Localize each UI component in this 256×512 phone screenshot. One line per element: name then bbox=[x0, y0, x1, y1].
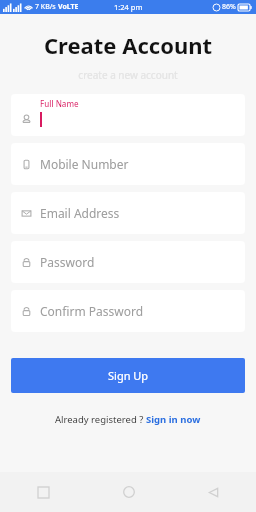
staticText: Confirm Password bbox=[40, 303, 144, 319]
button[interactable]: Password bbox=[11, 241, 245, 283]
button[interactable]: Sign in now bbox=[146, 413, 201, 426]
button[interactable]: Recents bbox=[0, 472, 86, 512]
button[interactable]: Mobile Number bbox=[11, 143, 245, 185]
staticText: 1:24 pm bbox=[114, 2, 143, 12]
button[interactable]: Home bbox=[86, 472, 171, 512]
staticText: VoLTE bbox=[58, 2, 79, 12]
staticText: Already registered ? bbox=[55, 413, 146, 426]
staticText: create a new account bbox=[0, 68, 256, 82]
button[interactable]: Sign Up bbox=[11, 358, 245, 393]
staticText: Sign Up bbox=[108, 368, 149, 383]
staticText: 7 KB/s bbox=[35, 2, 56, 12]
button[interactable]: Confirm Password bbox=[11, 290, 245, 332]
button[interactable]: Email Address bbox=[11, 192, 245, 234]
staticText: Password bbox=[40, 254, 95, 270]
button[interactable]: Full Name bbox=[11, 94, 245, 136]
staticText: Sign in now bbox=[146, 413, 201, 426]
staticText: Create Account bbox=[0, 30, 256, 60]
staticText: 86% bbox=[222, 2, 236, 12]
staticText: Email Address bbox=[40, 205, 120, 221]
staticText: Mobile Number bbox=[40, 156, 129, 172]
staticText: Full Name bbox=[40, 98, 79, 109]
